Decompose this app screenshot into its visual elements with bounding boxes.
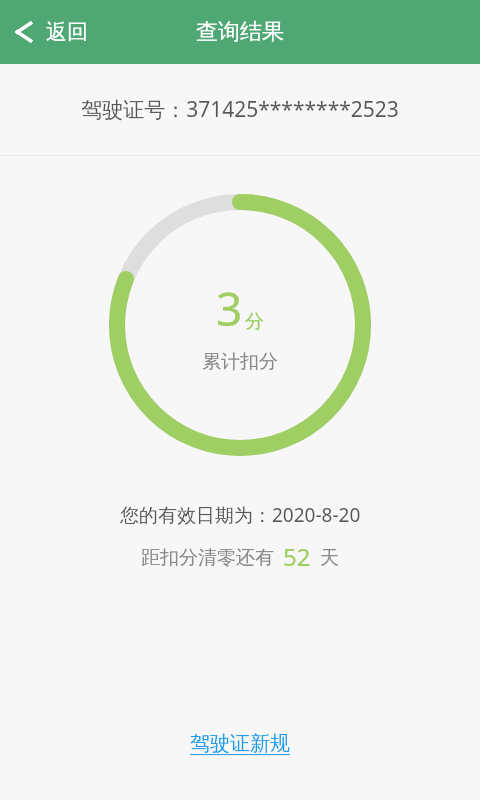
staticText: 您的有效日期为：2020-8-20 (120, 502, 361, 528)
staticText: 距扣分清零还有 (141, 546, 274, 570)
button[interactable]: 驾驶证新规 (176, 725, 304, 762)
other: Back (12, 19, 38, 45)
staticText: 分 (245, 310, 264, 334)
staticText: 天 (320, 546, 339, 570)
staticText: 52 (283, 540, 311, 573)
staticText: 返回 (46, 19, 88, 45)
staticText: 查询结果 (196, 18, 284, 46)
staticText: 3 (216, 277, 243, 340)
button[interactable]: Back (0, 0, 104, 64)
staticText: 累计扣分 (202, 350, 278, 374)
staticText: 驾驶证号：371425********2523 (81, 95, 399, 124)
staticText: 驾驶证新规 (190, 731, 290, 756)
